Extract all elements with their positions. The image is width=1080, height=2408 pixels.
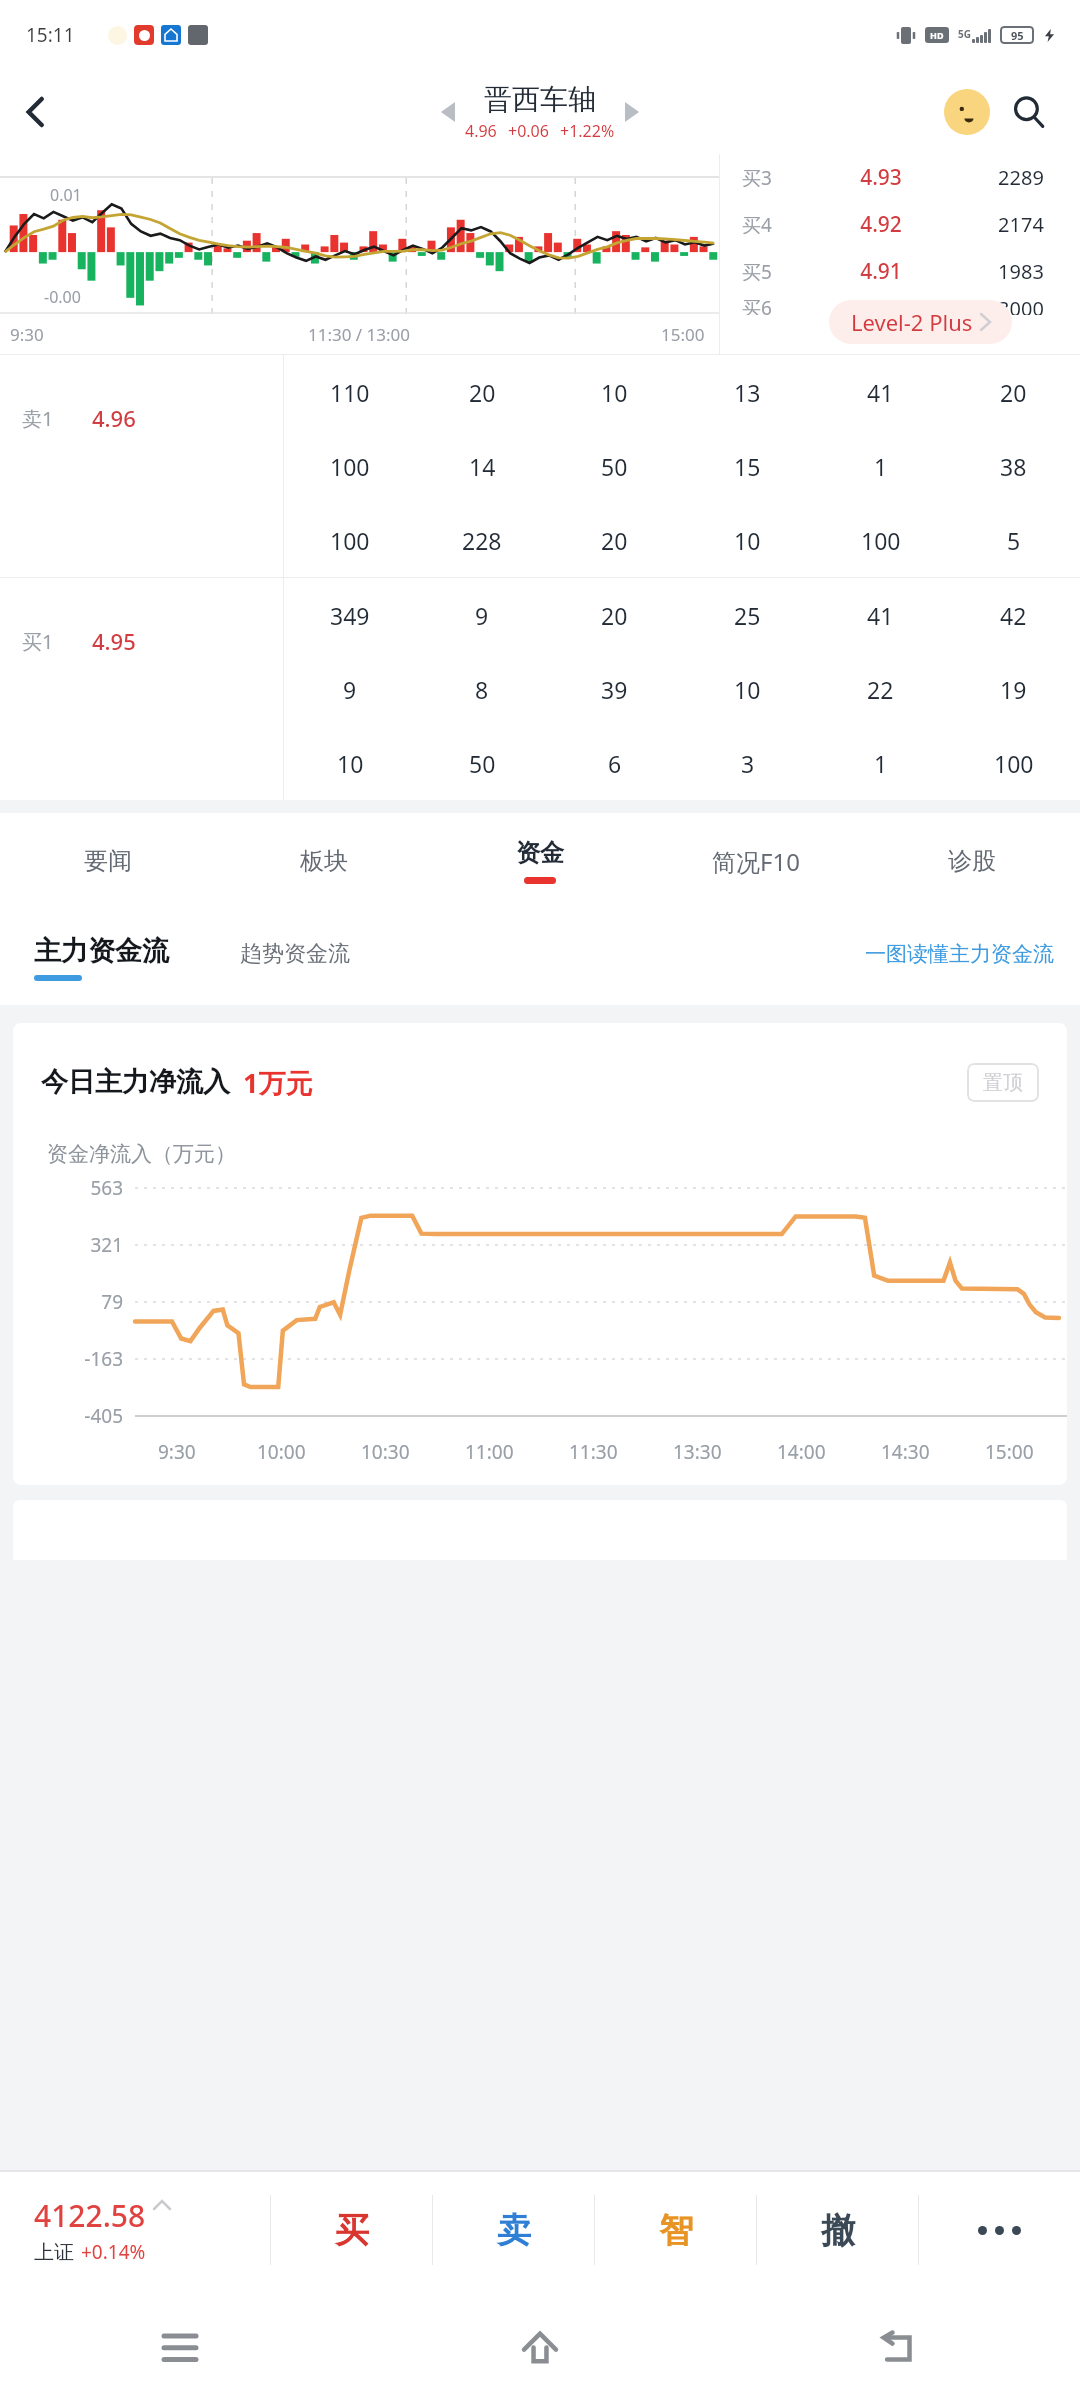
staticText: 15 (734, 451, 761, 482)
staticText: 10 (337, 748, 364, 779)
button[interactable]: 诊股 (864, 813, 1080, 909)
button[interactable]: Back (0, 76, 72, 148)
staticText: 卖1 (22, 405, 54, 432)
button[interactable]: 一图读懂主力资金流 (865, 941, 1054, 967)
button[interactable]: Level-2 Plus (829, 300, 1012, 344)
button[interactable]: 主力资金流 (34, 934, 169, 968)
staticText: 10 (601, 377, 628, 408)
staticText: 321 (13, 1232, 123, 1258)
staticText: 15:00 (661, 323, 705, 346)
button[interactable]: 卖 (433, 2170, 594, 2290)
button[interactable]: 买1 (0, 578, 1080, 800)
button[interactable]: Next (615, 95, 649, 129)
staticText: 智 (659, 2209, 693, 2252)
staticText: 买3 (742, 165, 800, 191)
staticText: 13:30 (673, 1439, 722, 1465)
staticText: -405 (13, 1403, 123, 1429)
staticText: 1983 (962, 258, 1080, 285)
staticText: 110 (330, 377, 370, 408)
staticText: 10 (734, 674, 761, 705)
staticText: 今日主力净流入 (41, 1065, 230, 1099)
staticText: 1 (874, 451, 888, 482)
button[interactable]: 简况F10 (648, 813, 864, 909)
staticText: 1 (874, 748, 888, 779)
staticText: 11:00 (465, 1439, 514, 1465)
staticText: 买5 (742, 259, 800, 285)
staticText: 4.96 (465, 120, 497, 142)
staticText: 14:30 (881, 1439, 930, 1465)
button[interactable]: Previous (431, 95, 465, 129)
button[interactable]: Recent apps (0, 2290, 360, 2408)
staticText: 2289 (962, 164, 1080, 191)
staticText: 95 (1011, 28, 1024, 43)
staticText: 4.91 (800, 257, 962, 286)
button[interactable]: 要闻 (0, 813, 216, 909)
staticText: 4.92 (800, 210, 962, 239)
staticText: 100 (330, 451, 370, 482)
button[interactable]: 买3 (720, 154, 1080, 201)
staticText: 11:30 (569, 1439, 618, 1465)
staticText: 1万元 (243, 1064, 313, 1101)
staticText: 2174 (962, 211, 1080, 238)
staticText: 10:00 (257, 1439, 306, 1465)
staticText: 5G (958, 27, 971, 41)
button[interactable]: 买5 (720, 248, 1080, 295)
button[interactable]: Assistant (936, 81, 998, 143)
staticText: 置顶 (983, 1070, 1023, 1095)
button[interactable]: Home (360, 2290, 720, 2408)
staticText: 5 (1007, 525, 1021, 556)
staticText: 20 (601, 525, 628, 556)
staticText: 9:30 (158, 1439, 196, 1465)
button[interactable]: Search (998, 81, 1060, 143)
staticText: 41 (867, 377, 894, 408)
staticText: 6 (608, 748, 622, 779)
staticText: Level-2 Plus (851, 307, 973, 337)
button[interactable]: 置顶 (967, 1063, 1039, 1102)
staticText: 79 (13, 1289, 123, 1315)
staticText: 9 (475, 600, 489, 631)
staticText: 14:00 (777, 1439, 826, 1465)
button[interactable]: 智 (595, 2170, 756, 2290)
staticText: 100 (330, 525, 370, 556)
staticText: 42 (1000, 600, 1027, 631)
staticText: 50 (601, 451, 628, 482)
button[interactable]: 资金 (432, 813, 648, 909)
staticText: 4122.58 (34, 2195, 146, 2236)
button[interactable]: More (919, 2170, 1080, 2290)
button[interactable]: 买4 (720, 201, 1080, 248)
staticText: 8 (475, 674, 489, 705)
staticText: -163 (13, 1346, 123, 1372)
button[interactable]: 撤 (757, 2170, 918, 2290)
button[interactable]: 今日主力净流入 (13, 1023, 1067, 1485)
button[interactable]: 买 (271, 2170, 432, 2290)
staticText: 3000 (962, 295, 1080, 315)
staticText: +0.06 (508, 120, 549, 142)
staticText: 22 (867, 674, 894, 705)
staticText: 50 (469, 748, 496, 779)
staticText: 13 (734, 377, 761, 408)
staticText: 买1 (22, 628, 54, 655)
staticText: 14 (469, 451, 496, 482)
staticText: +1.22% (560, 120, 615, 142)
button[interactable]: 4122.58 (0, 2195, 270, 2265)
button[interactable]: 趋势资金流 (240, 940, 350, 968)
staticText: 9 (343, 674, 357, 705)
staticText: 资金 (516, 838, 564, 868)
staticText: 15:11 (26, 22, 75, 48)
staticText: 228 (462, 525, 502, 556)
button[interactable]: 卖1 (0, 355, 1080, 577)
staticText: 资金净流入（万元） (47, 1141, 236, 1167)
staticText: 撤 (821, 2209, 855, 2252)
staticText: 20 (1000, 377, 1027, 408)
staticText: 买 (335, 2209, 369, 2252)
staticText: 0.01 (50, 184, 82, 206)
staticText: 25 (734, 600, 761, 631)
staticText: 349 (330, 600, 370, 631)
staticText: HD (930, 29, 944, 41)
button[interactable]: 板块 (216, 813, 432, 909)
staticText: 卖 (497, 2209, 531, 2252)
button[interactable]: Back (720, 2290, 1080, 2408)
staticText: 上证 (34, 2240, 74, 2265)
staticText: 要闻 (84, 846, 132, 876)
staticText: 9:30 (10, 323, 44, 346)
